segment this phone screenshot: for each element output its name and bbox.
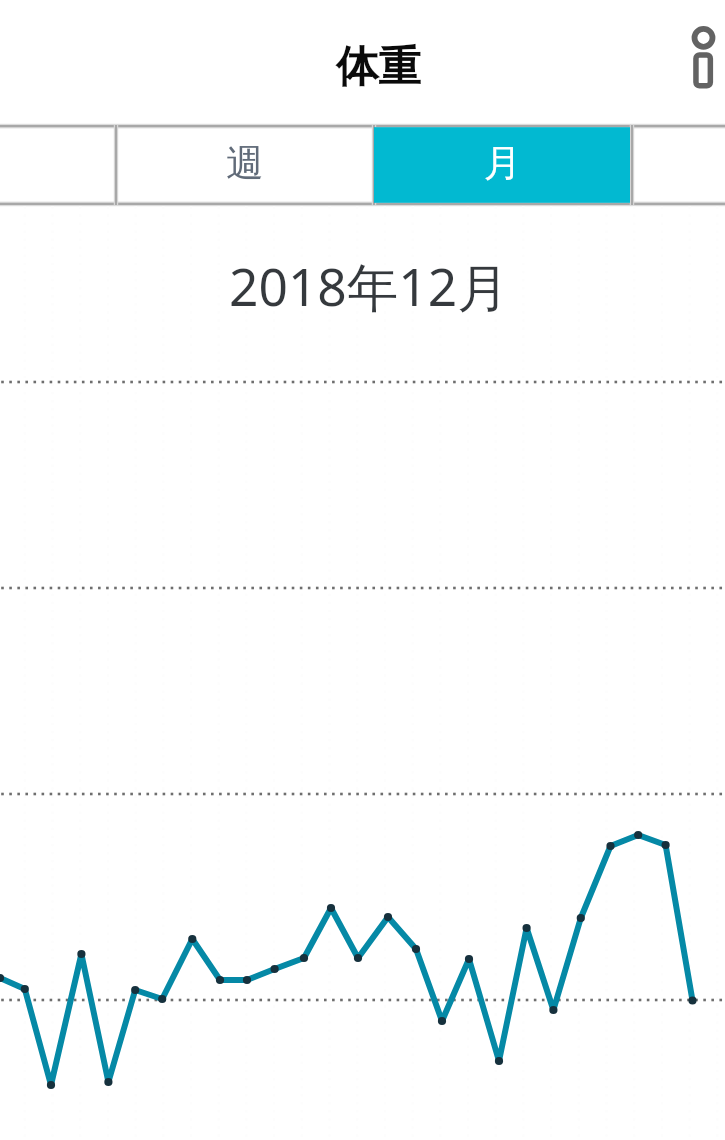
button[interactable] (632, 125, 725, 205)
staticText: 2018年12月 (229, 251, 509, 321)
button[interactable]: Profile (686, 18, 724, 94)
staticText: 週 (226, 140, 264, 187)
staticText: 体重 (336, 40, 421, 94)
button[interactable]: 週 (116, 125, 374, 205)
button[interactable] (0, 125, 116, 205)
button[interactable]: 月 (374, 125, 632, 205)
staticText: 月 (484, 140, 522, 187)
